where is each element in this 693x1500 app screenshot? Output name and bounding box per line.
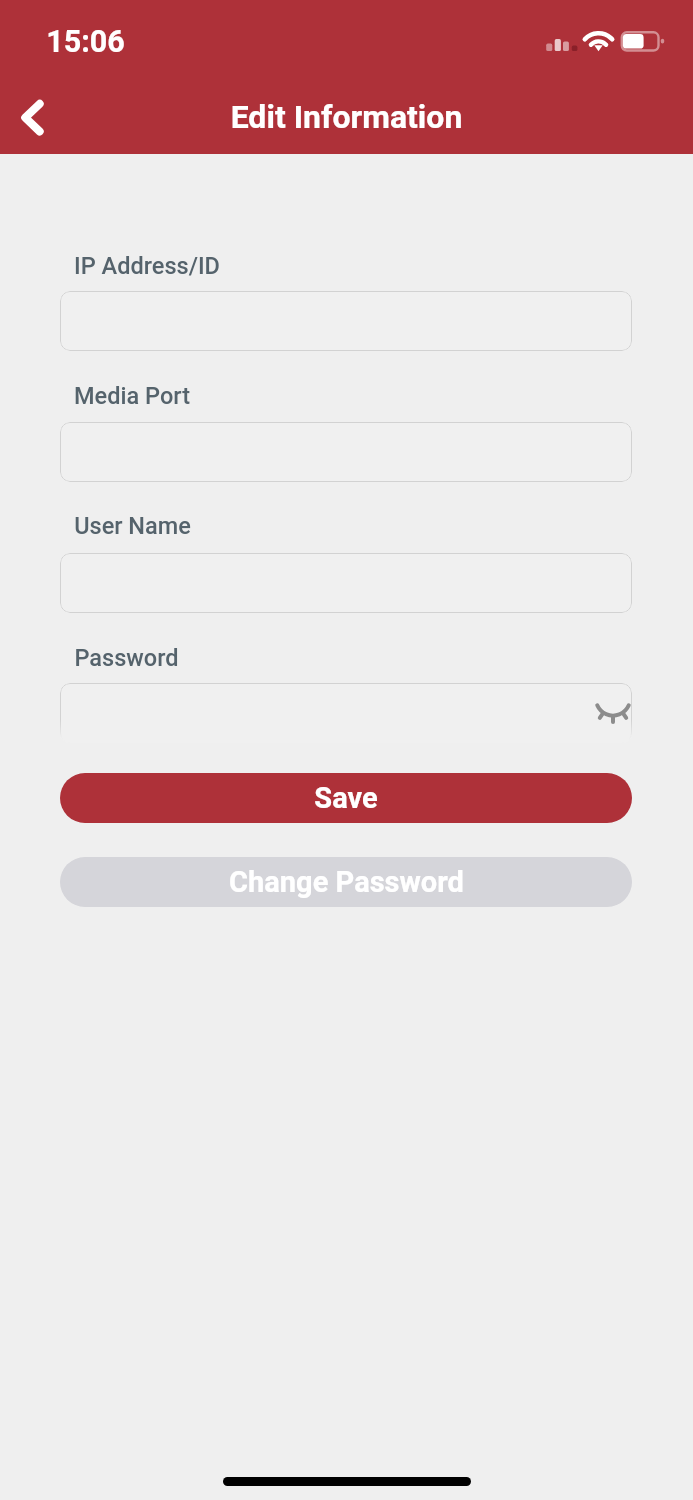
button[interactable]: Toggle password visibility — [60, 683, 632, 743]
button[interactable] — [60, 422, 632, 482]
staticText: IP Address/ID — [74, 252, 220, 280]
staticText: Save — [314, 781, 378, 815]
staticText: User Name — [74, 512, 191, 540]
staticText: 15:06 — [46, 24, 125, 60]
button[interactable]: Save — [60, 773, 632, 823]
staticText: Password — [74, 644, 179, 672]
staticText: Edit Information — [0, 98, 693, 136]
button[interactable] — [60, 553, 632, 613]
staticText: Media Port — [74, 382, 190, 410]
button[interactable] — [60, 291, 632, 351]
staticText: Change Password — [229, 865, 464, 899]
button[interactable]: Toggle password visibility — [585, 683, 632, 733]
button[interactable]: Back — [2, 88, 62, 148]
button[interactable]: Change Password — [60, 857, 632, 907]
